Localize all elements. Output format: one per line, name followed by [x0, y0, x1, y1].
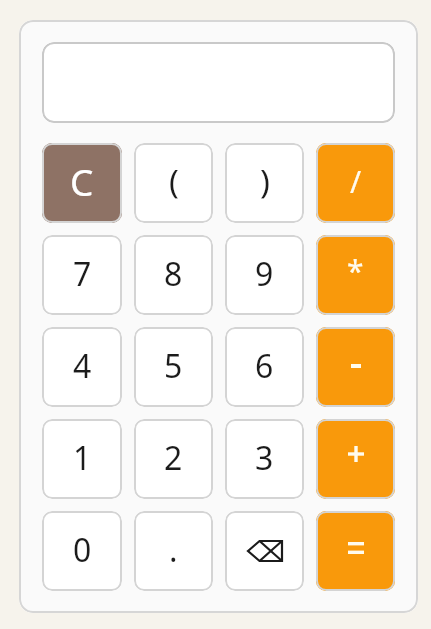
staticText: 1: [73, 436, 92, 480]
button[interactable]: [225, 511, 304, 591]
button[interactable]: .: [134, 511, 213, 591]
button[interactable]: 0: [42, 511, 122, 591]
staticText: 5: [164, 344, 183, 388]
button[interactable]: 5: [134, 327, 213, 407]
staticText: (: [169, 159, 179, 204]
button[interactable]: ): [225, 143, 304, 223]
button[interactable]: 8: [134, 235, 213, 315]
button[interactable]: 9: [225, 235, 304, 315]
staticText: ): [260, 159, 270, 204]
staticText: 3: [255, 436, 274, 480]
button[interactable]: 1: [42, 419, 122, 499]
staticText: 7: [73, 252, 92, 296]
staticText: 0: [73, 528, 92, 572]
staticText: *: [347, 250, 364, 291]
button[interactable]: 6: [225, 327, 304, 407]
staticText: 4: [73, 344, 92, 388]
staticText: 8: [164, 252, 183, 296]
button[interactable]: [316, 327, 395, 407]
button[interactable]: [42, 42, 395, 123]
staticText: C: [70, 156, 94, 206]
button[interactable]: 3: [225, 419, 304, 499]
button[interactable]: 2: [134, 419, 213, 499]
staticText: /: [350, 161, 362, 202]
button[interactable]: [316, 419, 395, 499]
button[interactable]: *: [316, 235, 395, 315]
staticText: .: [169, 528, 178, 572]
button[interactable]: 7: [42, 235, 122, 315]
staticText: 6: [255, 344, 274, 388]
button[interactable]: (: [134, 143, 213, 223]
button[interactable]: [316, 511, 395, 591]
staticText: 2: [164, 436, 183, 480]
staticText: 9: [255, 252, 274, 296]
button[interactable]: C: [42, 143, 122, 223]
button[interactable]: /: [316, 143, 395, 223]
button[interactable]: 4: [42, 327, 122, 407]
